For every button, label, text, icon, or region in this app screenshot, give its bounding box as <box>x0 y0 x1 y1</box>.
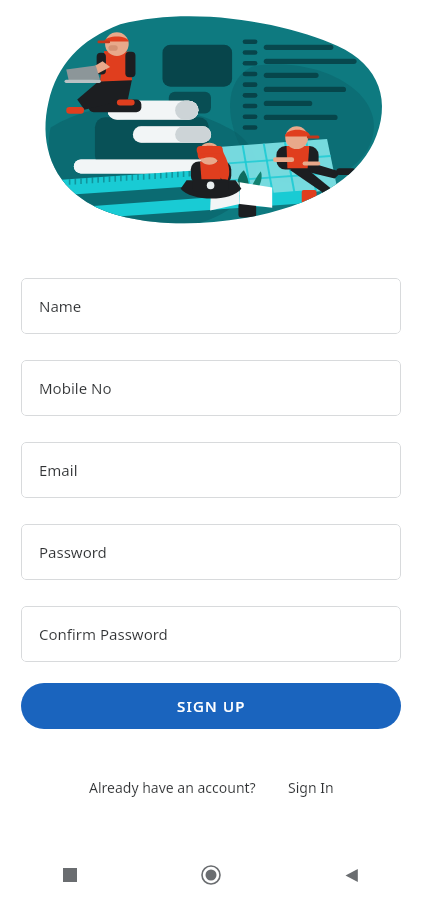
staticText: Mobile No <box>39 378 112 398</box>
staticText: Already have an account? <box>89 778 256 797</box>
button[interactable]: Recent apps <box>0 850 140 900</box>
button[interactable]: Mobile No <box>21 360 401 416</box>
button[interactable]: SIGN UP <box>21 683 401 729</box>
staticText: Confirm Password <box>39 624 168 644</box>
staticText: Email <box>39 460 78 480</box>
button[interactable]: Email <box>21 442 401 498</box>
staticText: SIGN UP <box>177 696 246 716</box>
button[interactable]: Home <box>140 850 281 900</box>
staticText: Sign In <box>288 778 334 797</box>
button[interactable]: Already have an account? <box>87 774 258 801</box>
button[interactable]: Name <box>21 278 401 334</box>
button[interactable]: Confirm Password <box>21 606 401 662</box>
staticText: Name <box>39 296 82 316</box>
button[interactable]: Sign In <box>286 774 336 801</box>
button[interactable]: Back <box>281 850 422 900</box>
staticText: Password <box>39 542 107 562</box>
button[interactable]: Password <box>21 524 401 580</box>
